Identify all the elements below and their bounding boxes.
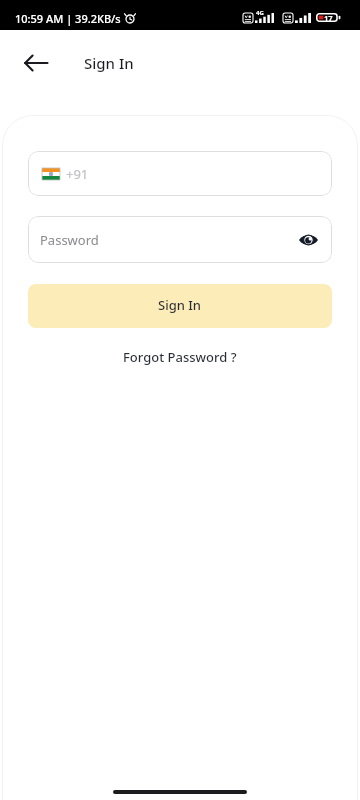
button[interactable]: Back bbox=[12, 39, 60, 87]
button[interactable]: +91 bbox=[28, 151, 332, 196]
staticText: Sign In bbox=[158, 296, 202, 314]
staticText: 17 bbox=[324, 13, 333, 23]
staticText: Sign In bbox=[84, 53, 134, 73]
staticText: +91 bbox=[66, 165, 89, 183]
button[interactable]: Sign In bbox=[28, 284, 332, 328]
staticText: Forgot Password ? bbox=[123, 348, 237, 366]
button[interactable]: Forgot Password ? bbox=[28, 348, 332, 366]
staticText: 10:59 AM | 39.2KB/s bbox=[15, 11, 121, 26]
staticText: Password bbox=[40, 231, 99, 249]
staticText: 4G bbox=[256, 9, 264, 17]
button[interactable]: Password bbox=[28, 216, 332, 263]
button[interactable]: Show password bbox=[292, 224, 324, 256]
